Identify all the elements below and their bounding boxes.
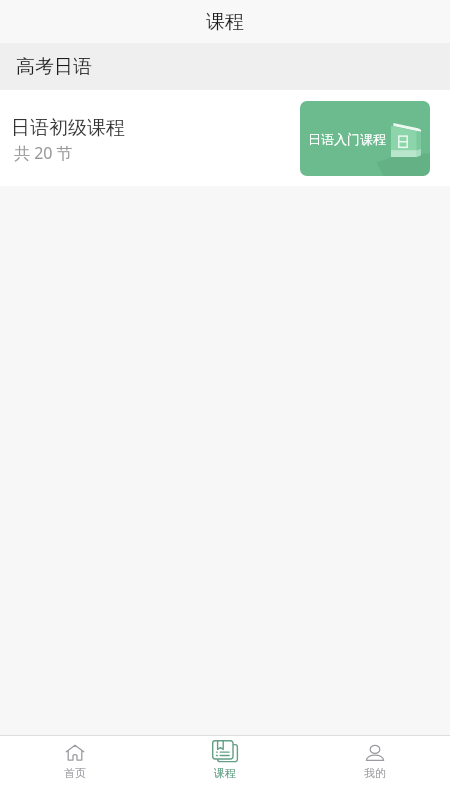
button[interactable]: 我的 [300,736,450,800]
other: 我的 [362,740,388,766]
staticText: 共 20 节 [14,142,73,164]
staticText: 日语入门课程 [308,131,386,147]
button[interactable]: 日语初级课程 [0,90,450,186]
staticText: 首页 [64,766,86,780]
other: 首页 [62,740,88,766]
other: 课程 [212,740,238,766]
staticText: 高考日语 [16,55,92,79]
button[interactable]: 高考日语 [0,43,450,90]
staticText: 日语初级课程 [11,116,125,140]
button[interactable]: 课程 [150,736,300,800]
staticText: 课程 [214,766,236,780]
button[interactable]: 首页 [0,736,150,800]
staticText: 课程 [206,10,244,34]
staticText: 我的 [364,766,386,780]
